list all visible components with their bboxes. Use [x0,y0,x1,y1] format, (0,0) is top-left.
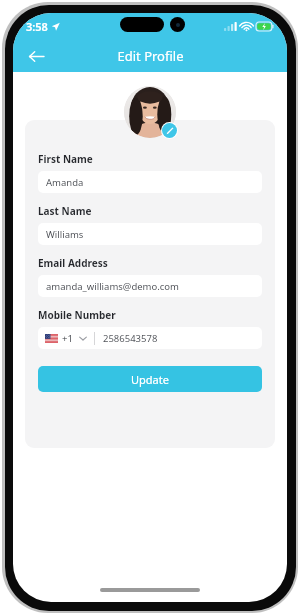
staticText: Email Address [38,256,108,270]
button[interactable]: Update [38,366,262,392]
staticText: Edit Profile [117,47,184,65]
button[interactable]: Edit photo [162,123,177,138]
button[interactable]: amanda_williams@demo.com [38,275,262,297]
staticText: Mobile Number [38,308,116,322]
staticText: Last Name [38,204,92,218]
staticText: Amanda [46,176,84,189]
staticText: First Name [38,152,93,166]
staticText: Williams [46,228,84,241]
button[interactable]: Back [21,41,51,71]
staticText: +1 [62,332,73,345]
button[interactable]: +1 [38,327,262,349]
staticText: 3:58 [26,19,48,34]
staticText: Update [131,372,169,387]
staticText: amanda_williams@demo.com [46,280,179,293]
button[interactable]: Williams [38,223,262,245]
button[interactable]: Amanda [38,171,262,193]
staticText: 2586543578 [103,332,158,345]
